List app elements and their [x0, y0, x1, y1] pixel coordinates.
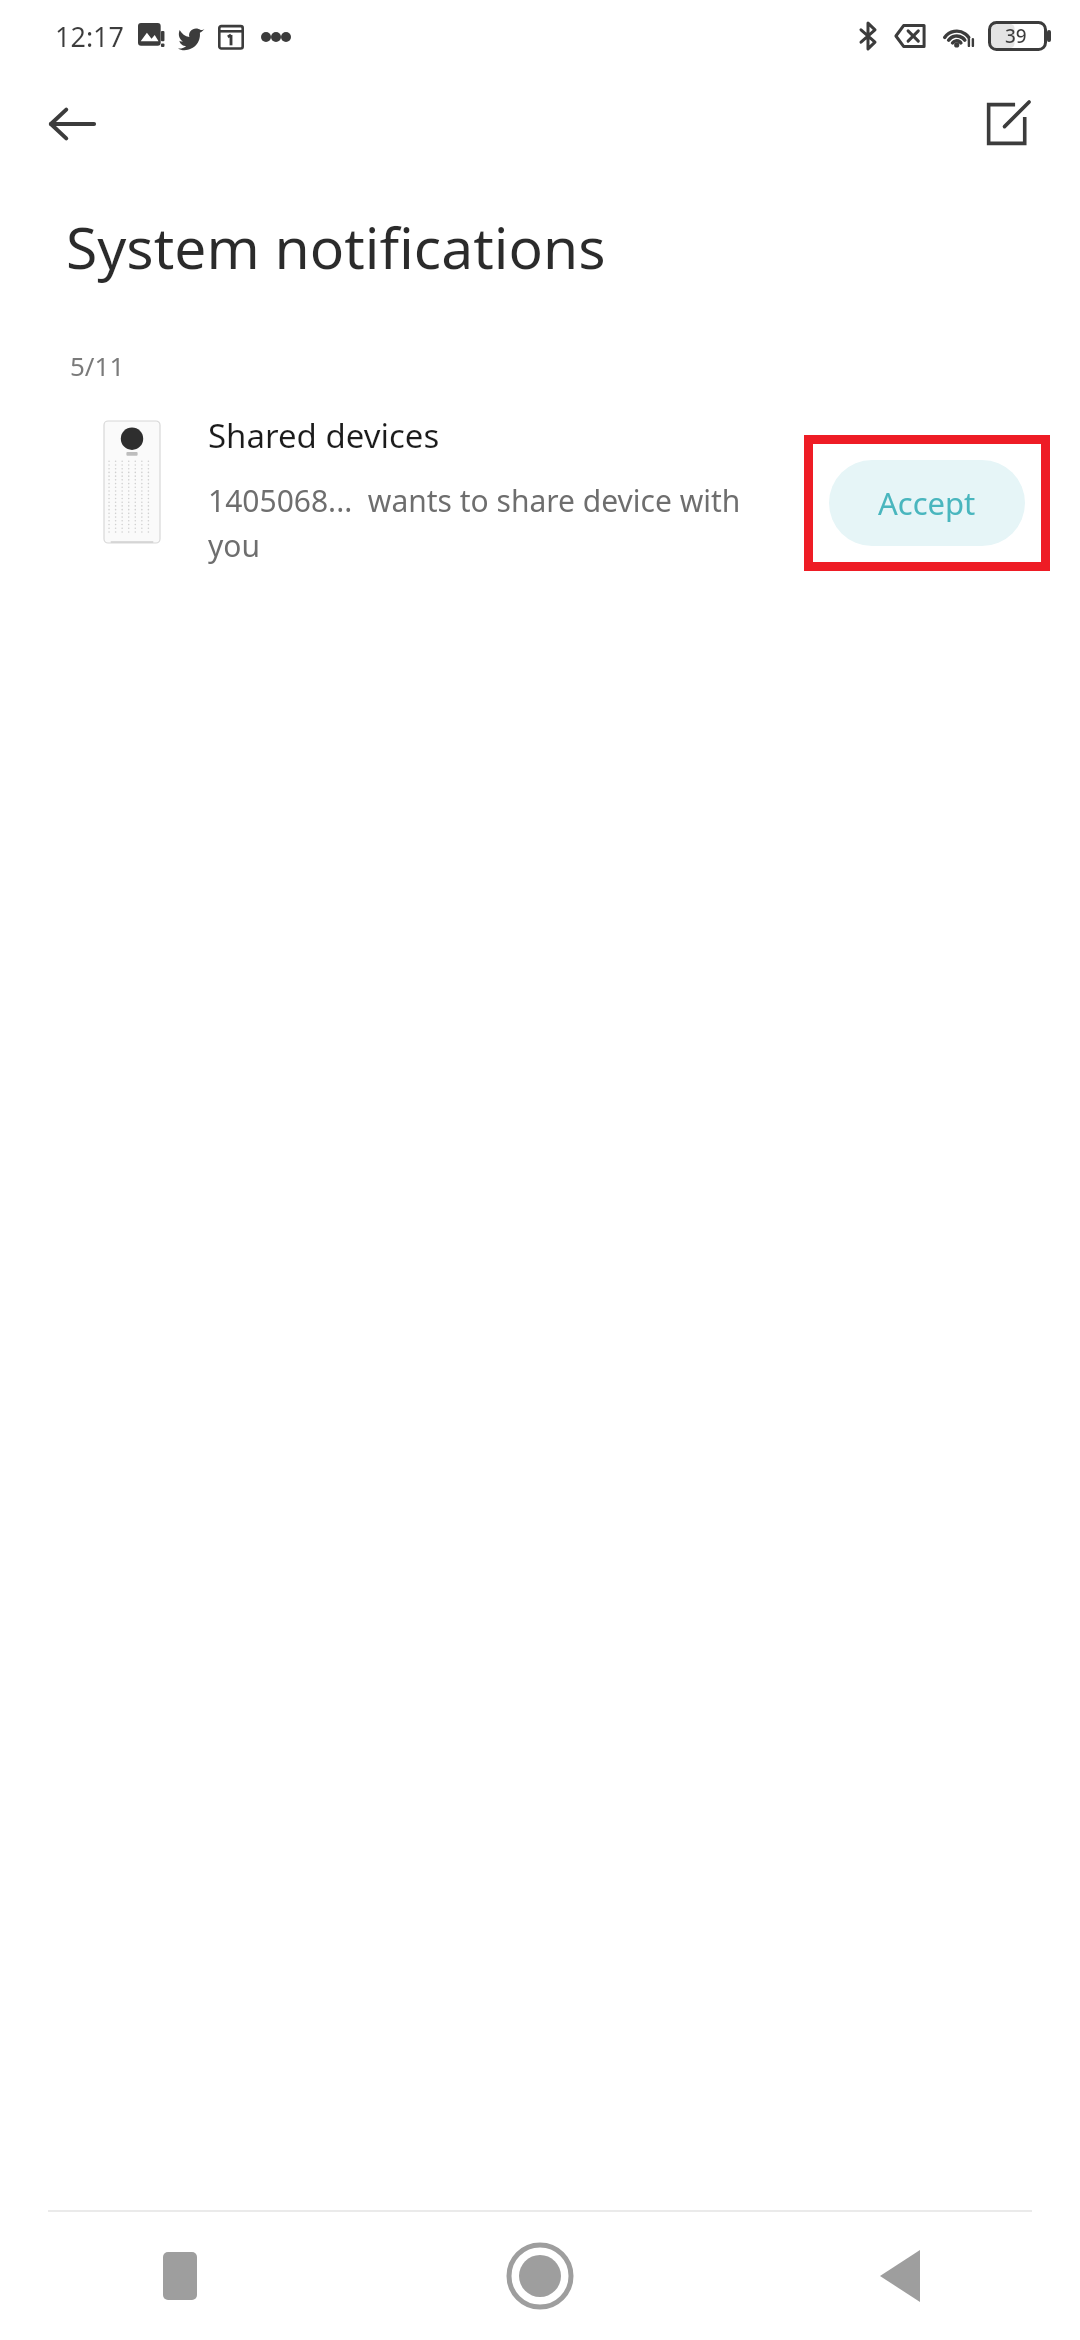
button[interactable]: Back — [720, 2212, 1080, 2340]
staticText: Shared devices — [208, 413, 440, 458]
button[interactable]: Edit — [972, 88, 1044, 160]
staticText: 5/11 — [70, 348, 125, 383]
staticText: 39 — [1005, 23, 1027, 49]
staticText: System notifications — [66, 208, 606, 286]
button[interactable]: Back — [36, 88, 108, 160]
button[interactable]: Home — [360, 2212, 720, 2340]
staticText: 1405068... wants to share device with yo… — [208, 480, 788, 566]
staticText: 12:17 — [55, 18, 125, 55]
button[interactable]: Recents — [0, 2212, 360, 2340]
button[interactable]: Accept — [829, 460, 1025, 546]
staticText: Accept — [878, 482, 976, 524]
button[interactable]: Shared devices — [0, 413, 1080, 571]
